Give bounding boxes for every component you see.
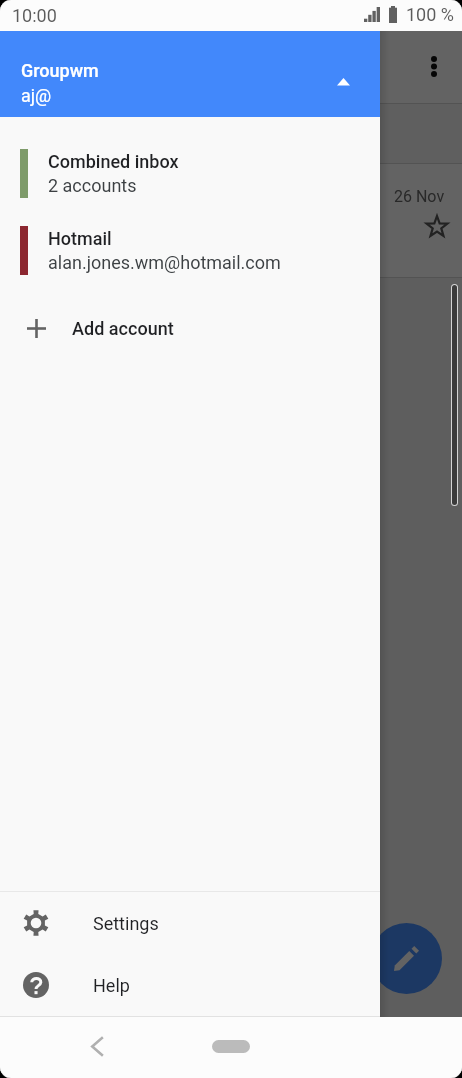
staticText: 100 % — [406, 4, 454, 25]
staticText: Settings — [93, 913, 159, 934]
button[interactable]: Groupwm — [0, 31, 380, 117]
button[interactable]: Add account — [0, 304, 380, 352]
staticText: Combined inbox — [48, 151, 179, 172]
staticText: Help — [93, 975, 130, 996]
staticText: alan.jones.wm@hotmail.com — [48, 252, 281, 273]
staticText: Add account — [72, 318, 174, 339]
staticText: Groupwm — [21, 60, 99, 81]
staticText: 2 accounts — [48, 175, 137, 196]
button[interactable]: Back — [90, 1036, 104, 1057]
button[interactable]: Help — [0, 954, 380, 1016]
button[interactable]: Collapse accounts — [337, 78, 350, 86]
button[interactable]: More options — [431, 56, 437, 77]
staticText: aj@ — [21, 85, 52, 106]
button[interactable]: Compose — [371, 923, 442, 994]
staticText: Hotmail — [48, 228, 112, 249]
button[interactable]: Settings — [0, 892, 380, 954]
button[interactable]: Combined inbox — [0, 149, 380, 198]
button[interactable]: Hotmail — [0, 226, 380, 275]
staticText: 10:00 — [12, 5, 57, 26]
button[interactable]: Home — [212, 1040, 250, 1053]
staticText: 26 Nov — [394, 187, 445, 206]
